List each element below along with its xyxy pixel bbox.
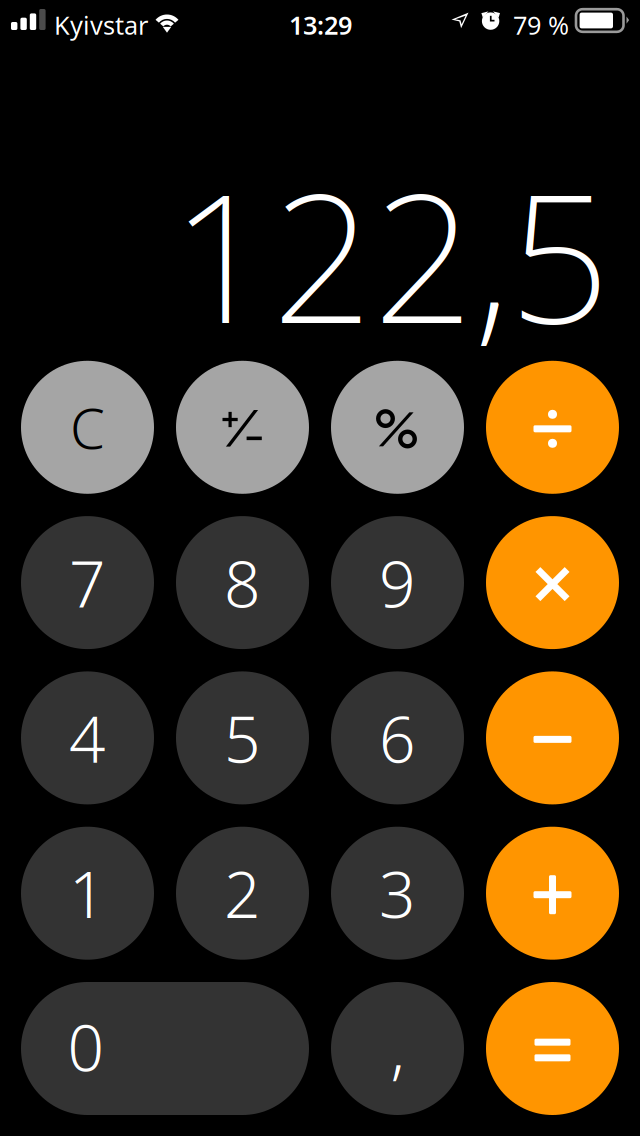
staticText: 1 <box>69 851 106 936</box>
button[interactable]: Divide <box>486 361 619 494</box>
button[interactable]: Minus <box>486 671 619 804</box>
staticText: C <box>70 390 105 464</box>
staticText: 13:29 <box>289 8 352 42</box>
staticText: 0 <box>67 1004 104 1089</box>
staticText: 4 <box>69 695 106 780</box>
button[interactable]: 1 <box>21 827 154 960</box>
button[interactable]: 7 <box>21 516 154 649</box>
staticText: 2 <box>224 851 261 936</box>
staticText: 8 <box>224 540 261 625</box>
staticText: 6 <box>379 695 416 780</box>
button[interactable]: Equals <box>486 982 619 1115</box>
button[interactable]: Multiply <box>486 516 619 649</box>
button[interactable]: 4 <box>21 671 154 804</box>
staticText: 122,5 <box>171 137 610 372</box>
button[interactable]: 2 <box>176 827 309 960</box>
staticText: 79 % <box>513 8 569 42</box>
button[interactable]: 3 <box>331 827 464 960</box>
button[interactable]: 8 <box>176 516 309 649</box>
staticText: 5 <box>224 695 261 780</box>
staticText: Kyivstar <box>54 8 148 42</box>
button[interactable]: Plus <box>486 827 619 960</box>
button[interactable]: , <box>331 982 464 1115</box>
button[interactable]: Toggle sign <box>176 361 309 494</box>
staticText: 3 <box>379 851 416 936</box>
button[interactable]: C <box>21 361 154 494</box>
button[interactable]: 5 <box>176 671 309 804</box>
button[interactable]: Percent <box>331 361 464 494</box>
button[interactable]: 9 <box>331 516 464 649</box>
button[interactable]: 0 <box>21 982 309 1115</box>
staticText: 9 <box>379 540 416 625</box>
staticText: , <box>390 1006 404 1091</box>
button[interactable]: 6 <box>331 671 464 804</box>
staticText: 7 <box>69 540 106 625</box>
